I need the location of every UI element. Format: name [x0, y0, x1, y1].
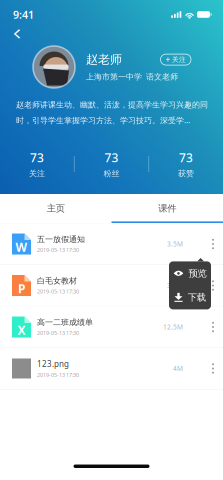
staticText: 123.png — [37, 359, 69, 369]
staticText: 2019-05-13 17:30 — [37, 288, 79, 295]
staticText: 下载 — [188, 292, 206, 303]
staticText: 12.5M — [163, 323, 183, 331]
staticText: 白毛女教材 — [37, 276, 77, 286]
button[interactable]: + — [160, 54, 191, 65]
button[interactable]: X — [0, 306, 223, 347]
button[interactable]: More options — [203, 353, 223, 383]
button[interactable]: 73 — [149, 151, 223, 177]
staticText: 73 — [30, 150, 44, 165]
staticText: 粉丝 — [103, 169, 119, 178]
staticText: 关注 — [172, 55, 186, 64]
staticText: 上海市第一中学 语文老师 — [86, 72, 178, 82]
staticText: 9:41 — [13, 7, 34, 22]
staticText: 赵老师 — [86, 52, 122, 67]
staticText: 2019-05-13 17:30 — [37, 329, 79, 336]
staticText: 主页 — [47, 203, 65, 214]
staticText: + — [165, 54, 170, 65]
staticText: 2019-05-13 17:30 — [37, 246, 79, 253]
button[interactable]: 73 — [0, 151, 74, 177]
button[interactable]: 主页 — [0, 194, 111, 223]
button[interactable]: W — [0, 223, 223, 264]
staticText: 关注 — [29, 169, 45, 178]
staticText: 2019-05-13 17:30 — [37, 371, 79, 378]
staticText: 73 — [179, 150, 193, 165]
staticText: W — [15, 239, 27, 255]
button[interactable]: P — [0, 265, 223, 306]
staticText: X — [17, 322, 25, 338]
staticText: 赵老师讲课生动、幽默、活泼，提高学生学习兴趣的同时，引导学生掌握学习方法、学习技… — [16, 100, 208, 125]
button[interactable]: 课件 — [111, 194, 223, 223]
staticText: 73 — [104, 150, 118, 165]
staticText: 五一放假通知 — [37, 234, 85, 244]
staticText: 获赞 — [178, 169, 194, 178]
staticText: 高一二班成绩单 — [37, 317, 93, 327]
button[interactable]: More options — [203, 229, 223, 259]
staticText: 课件 — [158, 203, 176, 214]
staticText: 4M — [173, 364, 183, 373]
button[interactable]: 下载 — [169, 285, 211, 309]
staticText: 3.5M — [167, 240, 183, 248]
button[interactable]: More options — [203, 270, 223, 300]
button[interactable]: 预览 — [169, 261, 211, 285]
staticText: 预览 — [188, 268, 206, 279]
button[interactable]: 73 — [75, 151, 148, 177]
button[interactable]: Back — [6, 26, 28, 42]
staticText: P — [18, 280, 25, 296]
staticText: 3.5M — [167, 281, 183, 290]
button[interactable]: 123.png — [0, 348, 223, 389]
button[interactable]: More options — [203, 312, 223, 342]
